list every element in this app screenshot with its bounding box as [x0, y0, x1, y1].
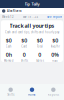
staticText: Home — [28, 93, 36, 96]
staticText: 0 — [23, 51, 26, 58]
staticText: Total — [37, 45, 43, 48]
button[interactable]: Reports — [43, 84, 64, 100]
staticText: Rate — [52, 59, 58, 62]
staticText: Cash — [6, 45, 12, 48]
staticText: Avg/hr — [51, 45, 60, 48]
staticText: 0% — [51, 51, 59, 58]
button[interactable]: Shifts — [0, 84, 21, 100]
staticText: Mar 18 - 24 — [22, 15, 38, 19]
staticText: Shifts — [21, 59, 28, 62]
button[interactable]: Home — [21, 84, 43, 100]
staticText: Cash and card tips, shifts and hourly pa… — [5, 30, 59, 34]
staticText: Week 12 — [2, 15, 14, 19]
staticText: $0 — [37, 37, 43, 44]
staticText: Shifts — [7, 93, 14, 96]
staticText: Alex Rivera — [7, 9, 22, 13]
staticText: Tip Tally — [24, 1, 39, 7]
staticText: Track all your tips — [9, 22, 54, 29]
staticText: Tables — [36, 59, 44, 62]
staticText: 0 — [38, 51, 41, 58]
staticText: Reports — [48, 93, 59, 96]
staticText: 0h — [6, 51, 12, 58]
staticText: Card — [21, 45, 27, 48]
staticText: $0 — [6, 37, 12, 44]
staticText: See report — [47, 15, 62, 19]
staticText: $0 — [21, 37, 27, 44]
staticText: Worked — [4, 59, 14, 62]
staticText: $0 — [52, 37, 58, 44]
